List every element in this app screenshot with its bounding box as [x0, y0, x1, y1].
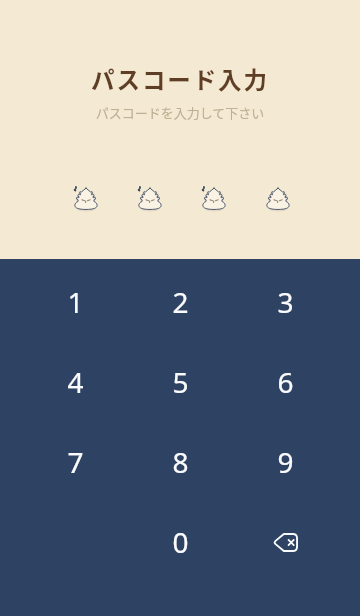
staticText: パスコードを入力して下さい [0, 103, 360, 122]
staticText: 2 [172, 283, 189, 321]
button[interactable]: 7 [33, 430, 117, 494]
button[interactable]: 1 [33, 270, 117, 334]
staticText: 8 [172, 443, 189, 481]
staticText: 0 [172, 523, 189, 561]
button[interactable]: 4 [33, 350, 117, 414]
button[interactable]: 5 [138, 350, 222, 414]
button[interactable]: 8 [138, 430, 222, 494]
button[interactable]: 3 [243, 270, 327, 334]
button[interactable]: 6 [243, 350, 327, 414]
staticText: 4 [67, 363, 84, 401]
staticText: パスコード入力 [0, 62, 360, 96]
staticText: 7 [67, 443, 84, 481]
staticText: 3 [277, 283, 294, 321]
staticText: 1 [67, 283, 84, 321]
staticText: 9 [277, 443, 294, 481]
button[interactable]: 0 [138, 510, 222, 574]
staticText: 5 [172, 363, 189, 401]
button[interactable]: Delete [243, 510, 327, 574]
staticText: 6 [277, 363, 294, 401]
button[interactable]: 9 [243, 430, 327, 494]
button[interactable]: 2 [138, 270, 222, 334]
